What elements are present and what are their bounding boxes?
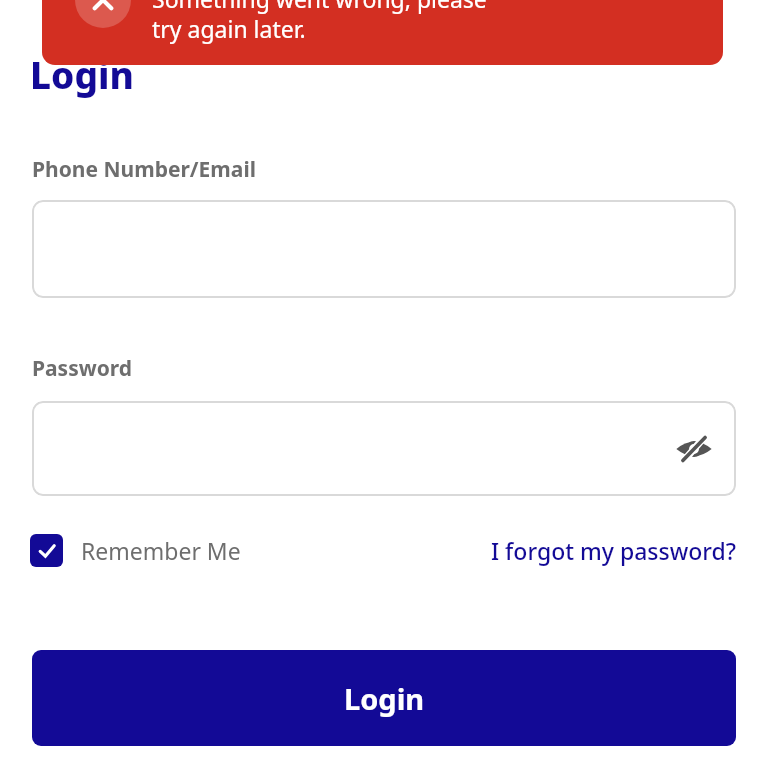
staticText: I forgot my password? bbox=[491, 535, 737, 566]
staticText: Something went wrong, please try again l… bbox=[152, 0, 487, 44]
button[interactable]: Remember Me bbox=[30, 534, 241, 567]
button[interactable]: Show password bbox=[666, 421, 722, 477]
staticText: Password bbox=[32, 354, 133, 383]
staticText: Remember Me bbox=[81, 535, 241, 566]
staticText: Phone Number/Email bbox=[32, 155, 256, 184]
button[interactable]: Something went wrong, please try again l… bbox=[42, 0, 723, 65]
button[interactable]: I forgot my password? bbox=[491, 535, 737, 566]
staticText: Login bbox=[30, 49, 134, 99]
button[interactable]: Show password bbox=[32, 401, 736, 496]
staticText: Login bbox=[344, 679, 425, 718]
button[interactable] bbox=[32, 200, 736, 298]
button[interactable]: Login bbox=[32, 650, 736, 746]
